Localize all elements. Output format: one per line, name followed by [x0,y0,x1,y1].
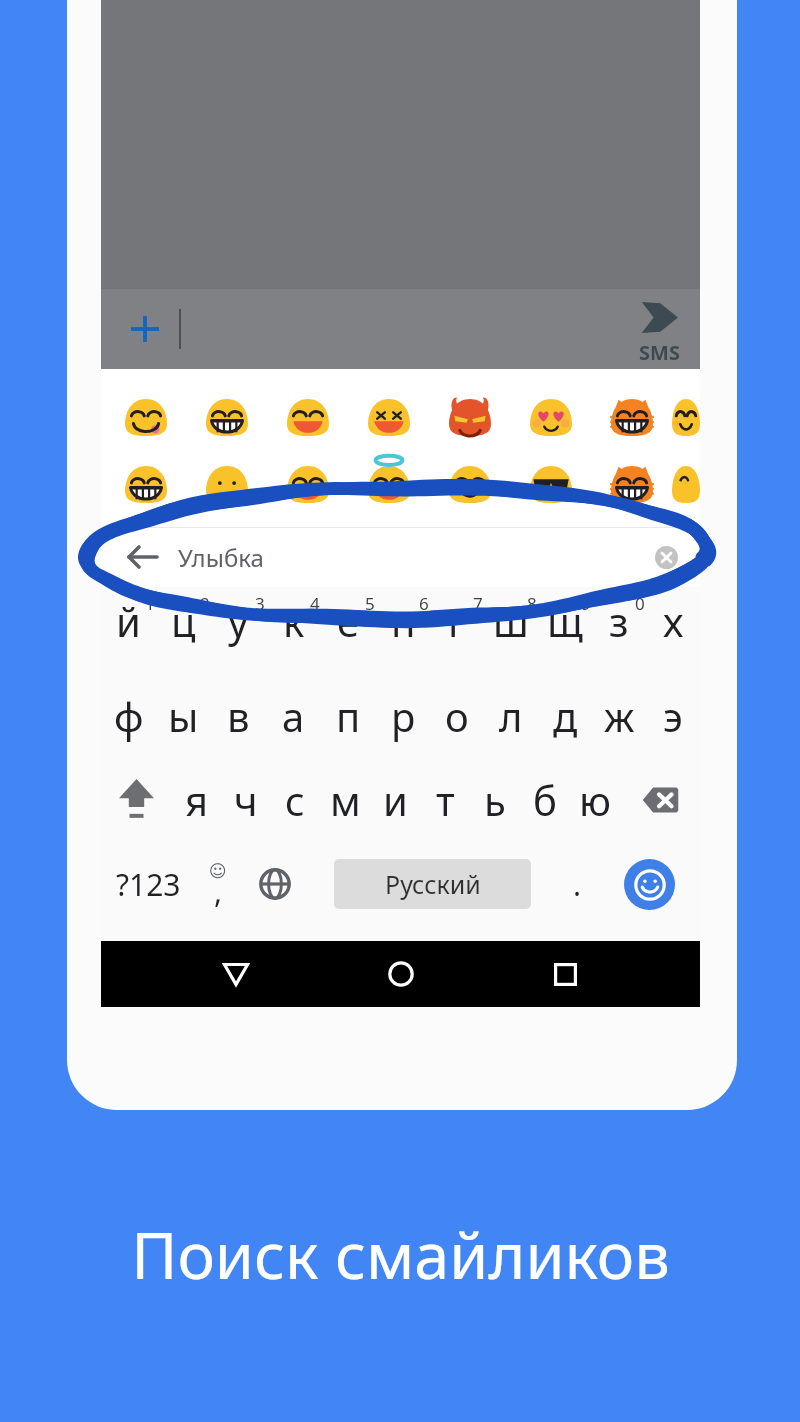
button[interactable]: Русский [334,859,531,909]
button[interactable]: Emoji [672,465,700,503]
staticText: т [436,773,455,827]
staticText: з [609,594,629,648]
button[interactable]: Emoji [429,398,510,436]
staticText: э [663,689,683,743]
staticText: Русский [385,867,481,901]
button[interactable]: Home [371,944,431,1004]
button[interactable]: б [520,759,570,841]
button[interactable]: ц [156,587,211,673]
button[interactable]: Back [119,533,167,581]
staticText: 2 [200,592,210,615]
button[interactable]: Emoji [510,465,591,503]
button[interactable]: т [420,759,470,841]
button[interactable]: Emoji [267,465,348,503]
button[interactable]: Emoji [348,465,429,503]
staticText: д [553,689,578,743]
button[interactable]: Backspace [620,759,700,841]
button[interactable]: д [538,673,592,759]
staticText: ш [493,594,529,648]
staticText: 5 [365,592,375,615]
staticText: ☺ [209,861,227,881]
button[interactable]: Emoji [186,465,267,503]
staticText: г [448,594,466,648]
staticText: 4 [310,592,320,615]
button[interactable]: а [266,673,321,759]
staticText: я [185,773,209,827]
staticText: р [391,689,416,743]
button[interactable]: п [321,673,376,759]
staticText: 0 [635,592,645,615]
button[interactable]: щ [538,587,592,673]
staticText: ф [114,689,144,743]
button[interactable]: Emoji [186,398,267,436]
button[interactable]: ь [470,759,520,841]
staticText: н [391,594,416,648]
staticText: ?123 [116,864,181,905]
button[interactable]: з [592,587,646,673]
staticText: ы [168,689,199,743]
button[interactable]: ж [592,673,646,759]
button[interactable]: ш [484,587,538,673]
button[interactable]: Emoji [672,398,700,436]
button[interactable]: г [430,587,484,673]
staticText: ь [484,773,506,827]
button[interactable]: э [646,673,700,759]
button[interactable]: и [370,759,420,841]
staticText: х [663,594,684,648]
button[interactable]: Emoji [429,465,510,503]
button[interactable]: Emoji [510,398,591,436]
staticText: а [282,689,305,743]
button[interactable]: й [101,587,156,673]
staticText: 7 [473,592,483,615]
button[interactable]: . [531,841,624,927]
button[interactable]: ю [570,759,620,841]
button[interactable]: ф [101,673,156,759]
button[interactable]: е [321,587,376,673]
button[interactable]: Emoji [267,398,348,436]
button[interactable]: , [190,841,246,927]
button[interactable]: у [211,587,266,673]
button[interactable]: Emoji [591,398,672,436]
button[interactable]: с [270,759,320,841]
button[interactable]: Emoji [105,398,186,436]
button[interactable]: Emoji keyboard [624,859,675,910]
button[interactable]: Emoji [348,398,429,436]
staticText: Поиск смайликов [131,1212,670,1298]
button[interactable]: Emoji [591,465,672,503]
staticText: 1 [145,592,155,615]
button[interactable]: о [430,673,484,759]
button[interactable]: ч [221,759,270,841]
staticText: щ [547,594,583,648]
button[interactable]: Emoji [105,465,186,503]
button[interactable]: Attach [125,309,165,349]
button[interactable]: л [484,673,538,759]
staticText: 6 [419,592,429,615]
button[interactable]: н [376,587,430,673]
button[interactable]: Change language [246,841,304,927]
staticText: . [573,864,582,905]
staticText: 8 [527,592,537,615]
button[interactable]: ?123 [106,841,190,927]
staticText: к [283,594,305,648]
button[interactable]: в [211,673,266,759]
button[interactable]: Back [206,944,266,1004]
button[interactable]: Clear search [644,535,688,579]
button[interactable]: я [172,759,221,841]
button[interactable]: Shift [101,759,172,841]
button[interactable]: к [266,587,321,673]
button[interactable]: Recent apps [535,944,595,1004]
staticText: л [499,689,523,743]
staticText: SMS [639,339,680,366]
staticText: с [285,773,305,827]
staticText: ю [579,773,611,827]
staticText: ч [234,773,258,827]
staticText: 9 [581,592,591,615]
button[interactable]: м [320,759,370,841]
button[interactable]: ы [156,673,211,759]
button[interactable]: х [646,587,700,673]
staticText: ц [171,594,196,648]
staticText: Улыбка [178,541,264,574]
button[interactable]: SMS [639,302,680,366]
button[interactable]: р [376,673,430,759]
staticText: в [227,689,250,743]
